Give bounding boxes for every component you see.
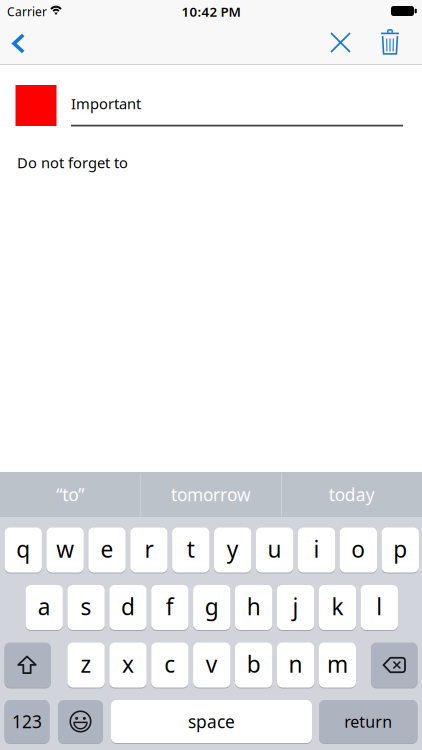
staticText: h [247,591,261,621]
staticText: tomorrow [171,483,251,506]
button[interactable]: n [277,642,314,687]
staticText: 123 [12,710,42,733]
button[interactable]: Emoji [58,700,103,743]
staticText: a [38,591,51,621]
staticText: m [327,649,348,679]
button[interactable]: space [111,700,312,743]
button[interactable]: today [282,472,421,517]
button[interactable]: d [109,585,147,630]
button[interactable]: “to” [1,472,140,517]
button[interactable]: y [214,527,251,572]
button[interactable]: k [319,585,356,630]
button[interactable]: Delete [378,28,402,55]
staticText: space [188,710,235,733]
button[interactable]: q [5,527,42,572]
staticText: u [268,534,282,564]
staticText: Carrier [7,3,47,19]
staticText: g [205,591,219,621]
button[interactable]: u [256,527,293,572]
button[interactable]: e [88,527,126,572]
button[interactable]: a [25,585,63,630]
staticText: z [81,649,92,679]
button[interactable]: 123 [4,700,49,743]
staticText: t [187,534,195,564]
staticText: o [351,534,365,564]
button[interactable]: s [67,585,105,630]
staticText: Important [71,94,141,113]
staticText: y [227,534,239,564]
button[interactable]: b [235,642,272,687]
staticText: r [144,534,153,564]
staticText: return [344,711,392,732]
button[interactable]: w [46,527,84,572]
staticText: d [121,591,135,621]
staticText: b [247,649,261,679]
button[interactable]: Shift [4,642,51,687]
button[interactable]: Back [12,33,25,54]
button[interactable]: g [193,585,230,630]
button[interactable]: h [235,585,272,630]
staticText: v [206,649,218,679]
staticText: today [329,483,375,506]
button[interactable]: tomorrow [141,472,280,517]
staticText: x [122,649,134,679]
button[interactable]: c [151,642,188,687]
button[interactable]: Close [330,32,351,53]
staticText: n [288,649,302,679]
button[interactable]: f [151,585,188,630]
staticText: j [292,591,298,621]
staticText: q [16,534,30,564]
button[interactable]: j [277,585,314,630]
button[interactable]: m [319,642,356,687]
button[interactable]: t [172,527,209,572]
staticText: w [56,534,74,564]
button[interactable]: x [109,642,147,687]
staticText: k [331,591,343,621]
button[interactable]: Delete [371,642,417,687]
staticText: l [376,591,382,621]
staticText: p [393,534,407,564]
staticText: f [166,591,174,621]
button[interactable]: i [298,527,335,572]
button[interactable]: z [67,642,105,687]
staticText: Do not forget to [17,153,128,172]
button[interactable]: p [382,527,419,572]
button[interactable]: r [130,527,168,572]
staticText: e [100,534,113,564]
staticText: s [81,591,92,621]
button[interactable]: v [193,642,230,687]
button[interactable]: l [361,585,398,630]
staticText: c [164,649,175,679]
staticText: 10:42 PM [181,3,240,20]
button[interactable]: return [319,700,417,743]
button[interactable]: o [340,527,377,572]
staticText: i [313,534,319,564]
staticText: “to” [56,483,84,506]
